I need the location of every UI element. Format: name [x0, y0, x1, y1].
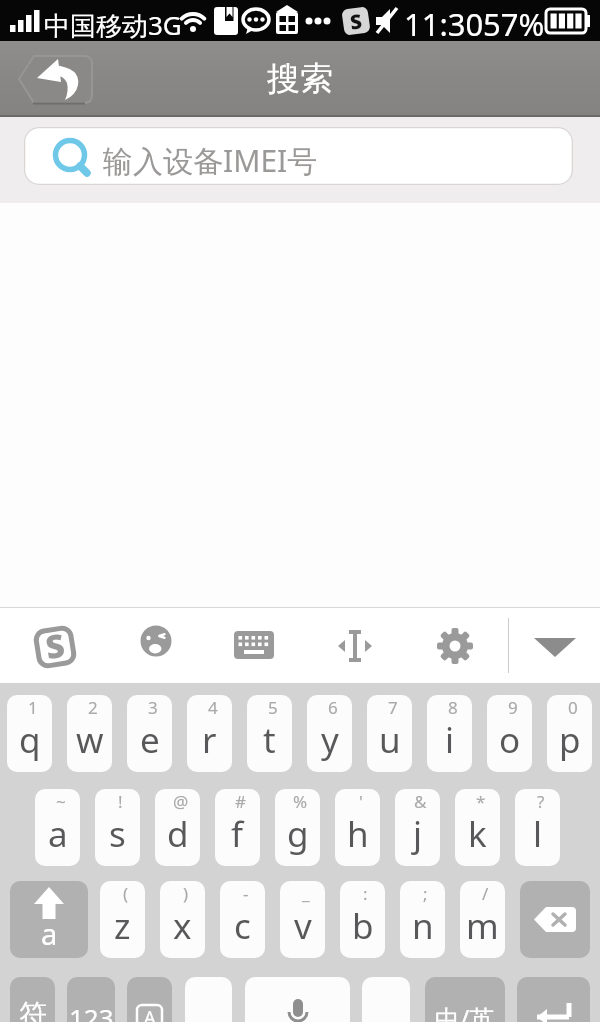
staticText: k	[468, 810, 487, 858]
staticText: S	[348, 7, 364, 35]
staticText: e	[140, 716, 160, 764]
button[interactable]: &	[395, 789, 440, 866]
staticText: '	[359, 790, 363, 813]
staticText: o	[499, 716, 521, 764]
button[interactable]: %	[275, 789, 320, 866]
staticText: (	[123, 882, 129, 905]
staticText: -	[243, 882, 249, 905]
button[interactable]	[185, 977, 232, 1022]
staticText: i	[445, 716, 455, 764]
staticText: /	[482, 882, 489, 905]
button[interactable]: -	[220, 881, 265, 958]
staticText: )	[183, 882, 189, 905]
staticText: 1	[28, 696, 38, 719]
button[interactable]: 6	[307, 695, 352, 772]
staticText: w	[76, 716, 104, 764]
button[interactable]: 4	[187, 695, 232, 772]
button[interactable]: !	[95, 789, 140, 866]
staticText: j	[413, 810, 423, 858]
staticText: _	[302, 882, 310, 905]
button[interactable]: *	[455, 789, 500, 866]
button[interactable]: 7	[367, 695, 412, 772]
staticText: A	[144, 1005, 156, 1022]
staticText: @	[173, 790, 189, 813]
button[interactable]: 0	[547, 695, 592, 772]
staticText: ;	[423, 882, 428, 905]
button[interactable]: 9	[487, 695, 532, 772]
staticText: n	[412, 902, 434, 950]
button[interactable]: ~	[35, 789, 80, 866]
button[interactable]: A	[127, 977, 172, 1022]
staticText: 0	[568, 696, 578, 719]
staticText: 2	[88, 696, 98, 719]
button[interactable]: 输入设备IMEI号	[24, 127, 573, 185]
staticText: #	[235, 790, 246, 813]
button[interactable]	[245, 977, 350, 1022]
staticText: 9	[508, 696, 518, 719]
staticText: 中国移动3G	[44, 7, 182, 43]
staticText: ?	[537, 790, 545, 813]
button[interactable]: _	[280, 881, 325, 958]
button[interactable]: '	[335, 789, 380, 866]
staticText: S	[42, 623, 68, 669]
staticText: q	[19, 716, 41, 764]
staticText: *	[476, 790, 486, 813]
staticText: 11:30	[404, 3, 484, 44]
button[interactable]	[362, 977, 410, 1022]
staticText: ~	[56, 790, 66, 813]
staticText: r	[202, 716, 217, 764]
staticText: y	[321, 716, 339, 764]
button[interactable]	[433, 624, 477, 668]
staticText: x	[173, 902, 192, 950]
staticText: p	[559, 716, 581, 764]
button[interactable]: /	[460, 881, 505, 958]
button[interactable]	[133, 624, 177, 668]
staticText: m	[466, 902, 499, 950]
button[interactable]	[517, 977, 590, 1022]
button[interactable]	[520, 881, 590, 958]
staticText: 5	[268, 696, 278, 719]
staticText: 8	[448, 696, 458, 719]
button[interactable]	[532, 624, 578, 668]
staticText: v	[294, 902, 312, 950]
staticText: g	[287, 810, 309, 858]
staticText: h	[347, 810, 369, 858]
staticText: 符	[19, 997, 47, 1022]
button[interactable]: @	[155, 789, 200, 866]
button[interactable]: 符	[10, 977, 55, 1022]
button[interactable]: 3	[127, 695, 172, 772]
button[interactable]: 8	[427, 695, 472, 772]
button[interactable]: a	[10, 881, 88, 958]
staticText: a	[41, 914, 58, 953]
staticText: 3	[148, 696, 158, 719]
button[interactable]: )	[160, 881, 205, 958]
staticText: d	[167, 810, 189, 858]
staticText: u	[379, 716, 401, 764]
button[interactable]	[333, 624, 377, 668]
button[interactable]: 1	[7, 695, 52, 772]
staticText: c	[234, 902, 251, 950]
button[interactable]: :	[340, 881, 385, 958]
staticText: f	[231, 810, 244, 858]
button[interactable]: 2	[67, 695, 112, 772]
button[interactable]	[232, 624, 276, 668]
staticText: %	[293, 790, 308, 813]
button[interactable]: 中/英	[425, 977, 505, 1022]
button[interactable]: 5	[247, 695, 292, 772]
button[interactable]: ?	[515, 789, 560, 866]
button[interactable]: (	[100, 881, 145, 958]
button[interactable]: ;	[400, 881, 445, 958]
staticText: 输入设备IMEI号	[103, 140, 318, 181]
staticText: 7	[388, 696, 398, 719]
button[interactable]: 123	[67, 977, 115, 1022]
button[interactable]: #	[215, 789, 260, 866]
staticText: !	[118, 790, 123, 813]
staticText: l	[533, 810, 543, 858]
staticText: s	[109, 810, 126, 858]
staticText: z	[114, 902, 131, 950]
button[interactable]: S	[30, 622, 80, 672]
staticText: 中/英	[435, 1001, 495, 1022]
button[interactable]	[19, 55, 93, 104]
staticText: t	[263, 716, 276, 764]
staticText: 123	[69, 1000, 114, 1022]
